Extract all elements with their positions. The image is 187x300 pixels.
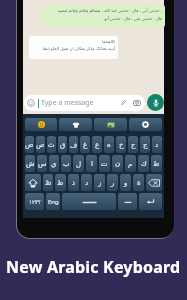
button[interactable]: ه	[104, 136, 114, 153]
button[interactable]: Themes	[59, 118, 92, 131]
button[interactable]: ا	[86, 155, 97, 172]
button[interactable]: د	[152, 136, 162, 153]
button[interactable]: د	[81, 174, 92, 191]
button[interactable]: Record voice message	[147, 94, 164, 111]
staticText: ت	[101, 160, 108, 168]
button[interactable]: ص	[36, 136, 45, 153]
button[interactable]: ج	[140, 136, 150, 153]
staticText: ق	[60, 141, 66, 149]
staticText: ة	[137, 179, 141, 187]
button[interactable]: Enter	[139, 193, 162, 210]
staticText: ص	[36, 141, 45, 149]
staticText: ف	[70, 141, 78, 149]
staticText: ج	[143, 141, 148, 149]
button[interactable]: ر	[107, 174, 118, 191]
staticText: ط	[153, 160, 160, 168]
button[interactable]: Settings	[129, 118, 162, 131]
staticText: غ	[83, 141, 88, 149]
staticText: ظ	[45, 179, 52, 187]
button[interactable]: ح	[128, 136, 138, 153]
staticText: حدثني أبي ، قال : حدثني عبد الله ، فسالم…	[45, 8, 162, 21]
button[interactable]: م	[125, 155, 136, 172]
staticText: ح	[131, 141, 136, 149]
button[interactable]: ع	[92, 136, 102, 153]
staticText: د	[155, 141, 159, 149]
button[interactable]: ؟١٢٣	[25, 193, 44, 210]
button[interactable]: ق	[58, 136, 67, 153]
button[interactable]: ث	[47, 136, 56, 153]
button[interactable]: Stickers	[94, 118, 127, 131]
staticText: ن	[115, 160, 121, 168]
staticText: ؟١٢٣	[29, 199, 41, 205]
button[interactable]: ة	[133, 174, 144, 191]
staticText: Eng	[48, 198, 59, 206]
staticText: ا	[91, 160, 93, 168]
button[interactable]: Type a message	[24, 95, 145, 111]
button[interactable]: Backspace	[146, 174, 162, 191]
button[interactable]: ذ	[68, 174, 79, 191]
staticText: كالفحما أسد بعدالک وذکر یمکان ان تقول ال…	[32, 39, 115, 51]
button[interactable]: خ	[116, 136, 126, 153]
button[interactable]: و	[120, 174, 131, 191]
button[interactable]: Comma	[118, 193, 137, 210]
staticText: ع	[95, 141, 100, 149]
button[interactable]: ظ	[43, 174, 53, 191]
button[interactable]: Eng	[46, 193, 60, 210]
staticText: ل	[76, 160, 82, 168]
staticText: د	[85, 179, 89, 187]
button[interactable]: ل	[73, 155, 84, 172]
button[interactable]: ض	[25, 136, 34, 153]
button[interactable]: ب	[61, 155, 71, 172]
button[interactable]: ك	[138, 155, 149, 172]
button[interactable]: ط	[151, 155, 162, 172]
button[interactable]: ط	[55, 174, 66, 191]
staticText: س	[38, 160, 47, 168]
staticText: ط	[57, 179, 64, 187]
staticText: ب	[63, 160, 70, 168]
button[interactable]: Space	[62, 193, 116, 210]
staticText: Type a message	[41, 98, 94, 108]
staticText: ذ	[72, 179, 76, 187]
staticText: ي	[51, 160, 57, 168]
staticText: و	[124, 179, 128, 187]
staticText: ز	[98, 179, 102, 187]
staticText: خ	[119, 141, 124, 149]
button[interactable]: ت	[99, 155, 110, 172]
button[interactable]: ن	[112, 155, 123, 172]
staticText: م	[128, 160, 133, 168]
staticText: ش	[26, 160, 35, 168]
staticText: ر	[111, 179, 115, 187]
button[interactable]: غ	[80, 136, 90, 153]
staticText: New Arabic Keyboard	[6, 256, 181, 278]
staticText: ه	[107, 141, 111, 149]
button[interactable]: س	[37, 155, 47, 172]
button[interactable]: Emoji	[25, 118, 57, 131]
staticText: ث	[48, 141, 55, 149]
button[interactable]: ي	[49, 155, 59, 172]
button[interactable]: ز	[94, 174, 105, 191]
button[interactable]: ش	[25, 155, 35, 172]
button[interactable]: ف	[69, 136, 78, 153]
staticText: ك	[141, 160, 147, 168]
button[interactable]: Shift	[25, 174, 41, 191]
staticText: ض	[25, 141, 34, 149]
